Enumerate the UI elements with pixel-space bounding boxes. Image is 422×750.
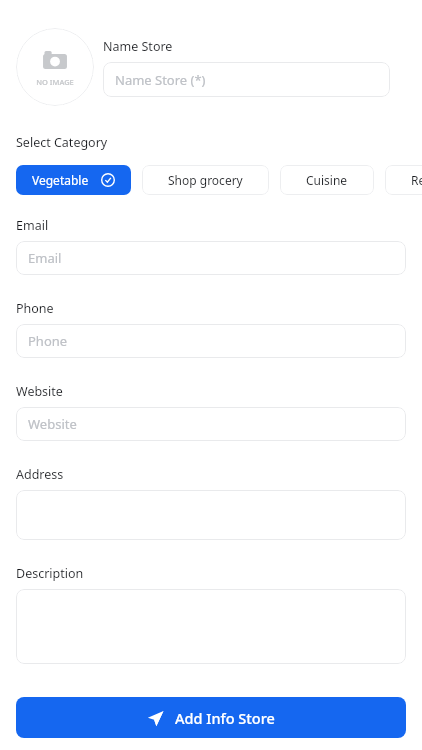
staticText: Address <box>16 466 64 483</box>
staticText: Vegetable <box>32 172 89 188</box>
staticText: Description <box>16 565 84 582</box>
staticText: Select Category <box>16 134 108 151</box>
button[interactable]: Phone <box>16 324 406 358</box>
staticText: Shop grocery <box>168 172 243 188</box>
staticText: Email <box>28 249 62 267</box>
staticText: NO IMAGE <box>36 77 74 87</box>
staticText: Name Store (*) <box>115 71 206 89</box>
button[interactable]: Name Store (*) <box>103 62 390 97</box>
button[interactable]: Email <box>16 241 406 275</box>
staticText: Email <box>16 217 49 234</box>
button[interactable]: Cuisine <box>280 165 374 195</box>
button[interactable]: Restaurant <box>385 165 422 195</box>
staticText: Add Info Store <box>175 708 275 728</box>
staticText: Website <box>28 415 77 433</box>
staticText: Phone <box>28 332 68 350</box>
button[interactable]: Add store photo <box>16 28 94 106</box>
button[interactable]: Shop grocery <box>142 165 269 195</box>
button[interactable] <box>16 490 406 540</box>
button[interactable]: Vegetable <box>16 165 131 195</box>
button[interactable] <box>16 589 406 664</box>
staticText: Name Store <box>103 38 173 55</box>
button[interactable]: Website <box>16 407 406 441</box>
button[interactable]: Add Info Store <box>16 697 406 738</box>
staticText: Phone <box>16 300 54 317</box>
staticText: Restaurant <box>411 172 422 188</box>
staticText: Website <box>16 383 63 400</box>
staticText: Cuisine <box>306 172 348 188</box>
